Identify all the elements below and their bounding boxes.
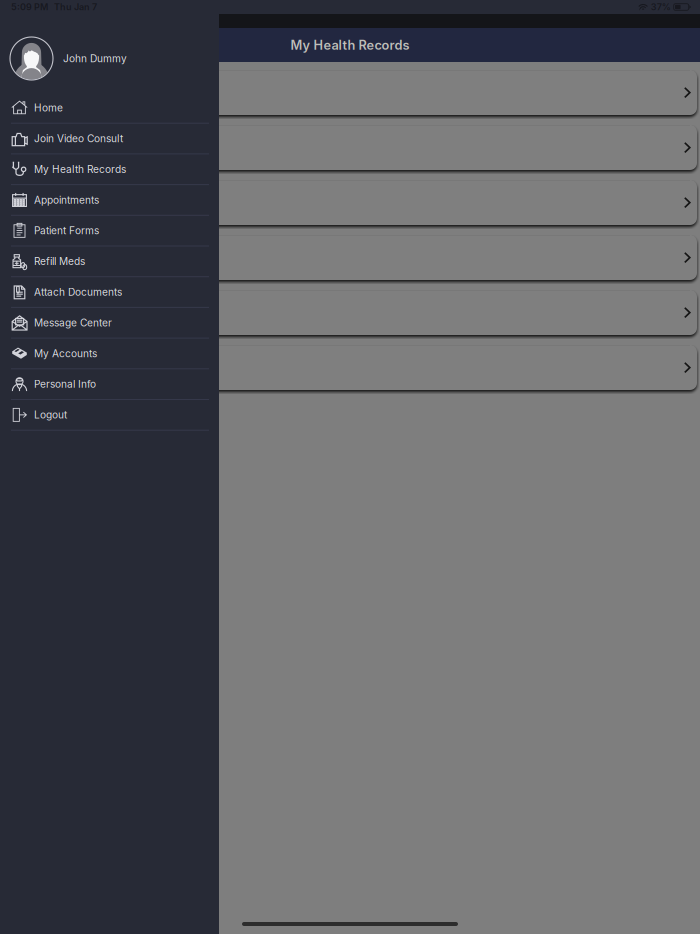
button[interactable]: My Accounts <box>0 339 219 369</box>
staticText: 37% <box>651 1 671 12</box>
staticText: Home <box>34 102 63 114</box>
staticText: My Accounts <box>34 347 97 360</box>
button[interactable]: Logout <box>0 400 219 431</box>
staticText: Refill Meds <box>34 255 85 267</box>
staticText: Appointments <box>34 194 99 206</box>
button[interactable]: Personal Info <box>0 369 219 400</box>
button[interactable]: Refill Meds <box>0 246 219 277</box>
button[interactable]: John Dummy <box>0 14 219 93</box>
button[interactable]: Health record <box>3 235 697 280</box>
button[interactable]: Health record <box>3 290 697 335</box>
staticText: Logout <box>34 409 67 421</box>
staticText: Patient Forms <box>34 224 99 237</box>
button[interactable]: Attach Documents <box>0 277 219 308</box>
button[interactable]: Health record <box>3 180 697 225</box>
staticText: Message Center <box>34 317 112 329</box>
button[interactable]: Health record <box>3 125 697 170</box>
staticText: John Dummy <box>63 52 127 65</box>
button[interactable]: Home <box>0 93 219 124</box>
button[interactable]: Health record <box>3 345 697 390</box>
button[interactable]: Message Center <box>0 308 219 339</box>
button[interactable]: My Health Records <box>0 154 219 185</box>
button[interactable]: Join Video Consult <box>0 124 219 154</box>
staticText: My Health Records <box>290 37 409 53</box>
staticText: My Health Records <box>34 163 126 175</box>
button[interactable]: Appointments <box>0 185 219 216</box>
staticText: Join Video Consult <box>34 132 123 145</box>
staticText: Personal Info <box>34 378 96 390</box>
staticText: 5:09 PM <box>11 1 48 12</box>
staticText: Attach Documents <box>34 286 122 298</box>
button[interactable]: Health record <box>3 70 697 115</box>
button[interactable]: Patient Forms <box>0 216 219 246</box>
staticText: Thu Jan 7 <box>54 1 97 12</box>
